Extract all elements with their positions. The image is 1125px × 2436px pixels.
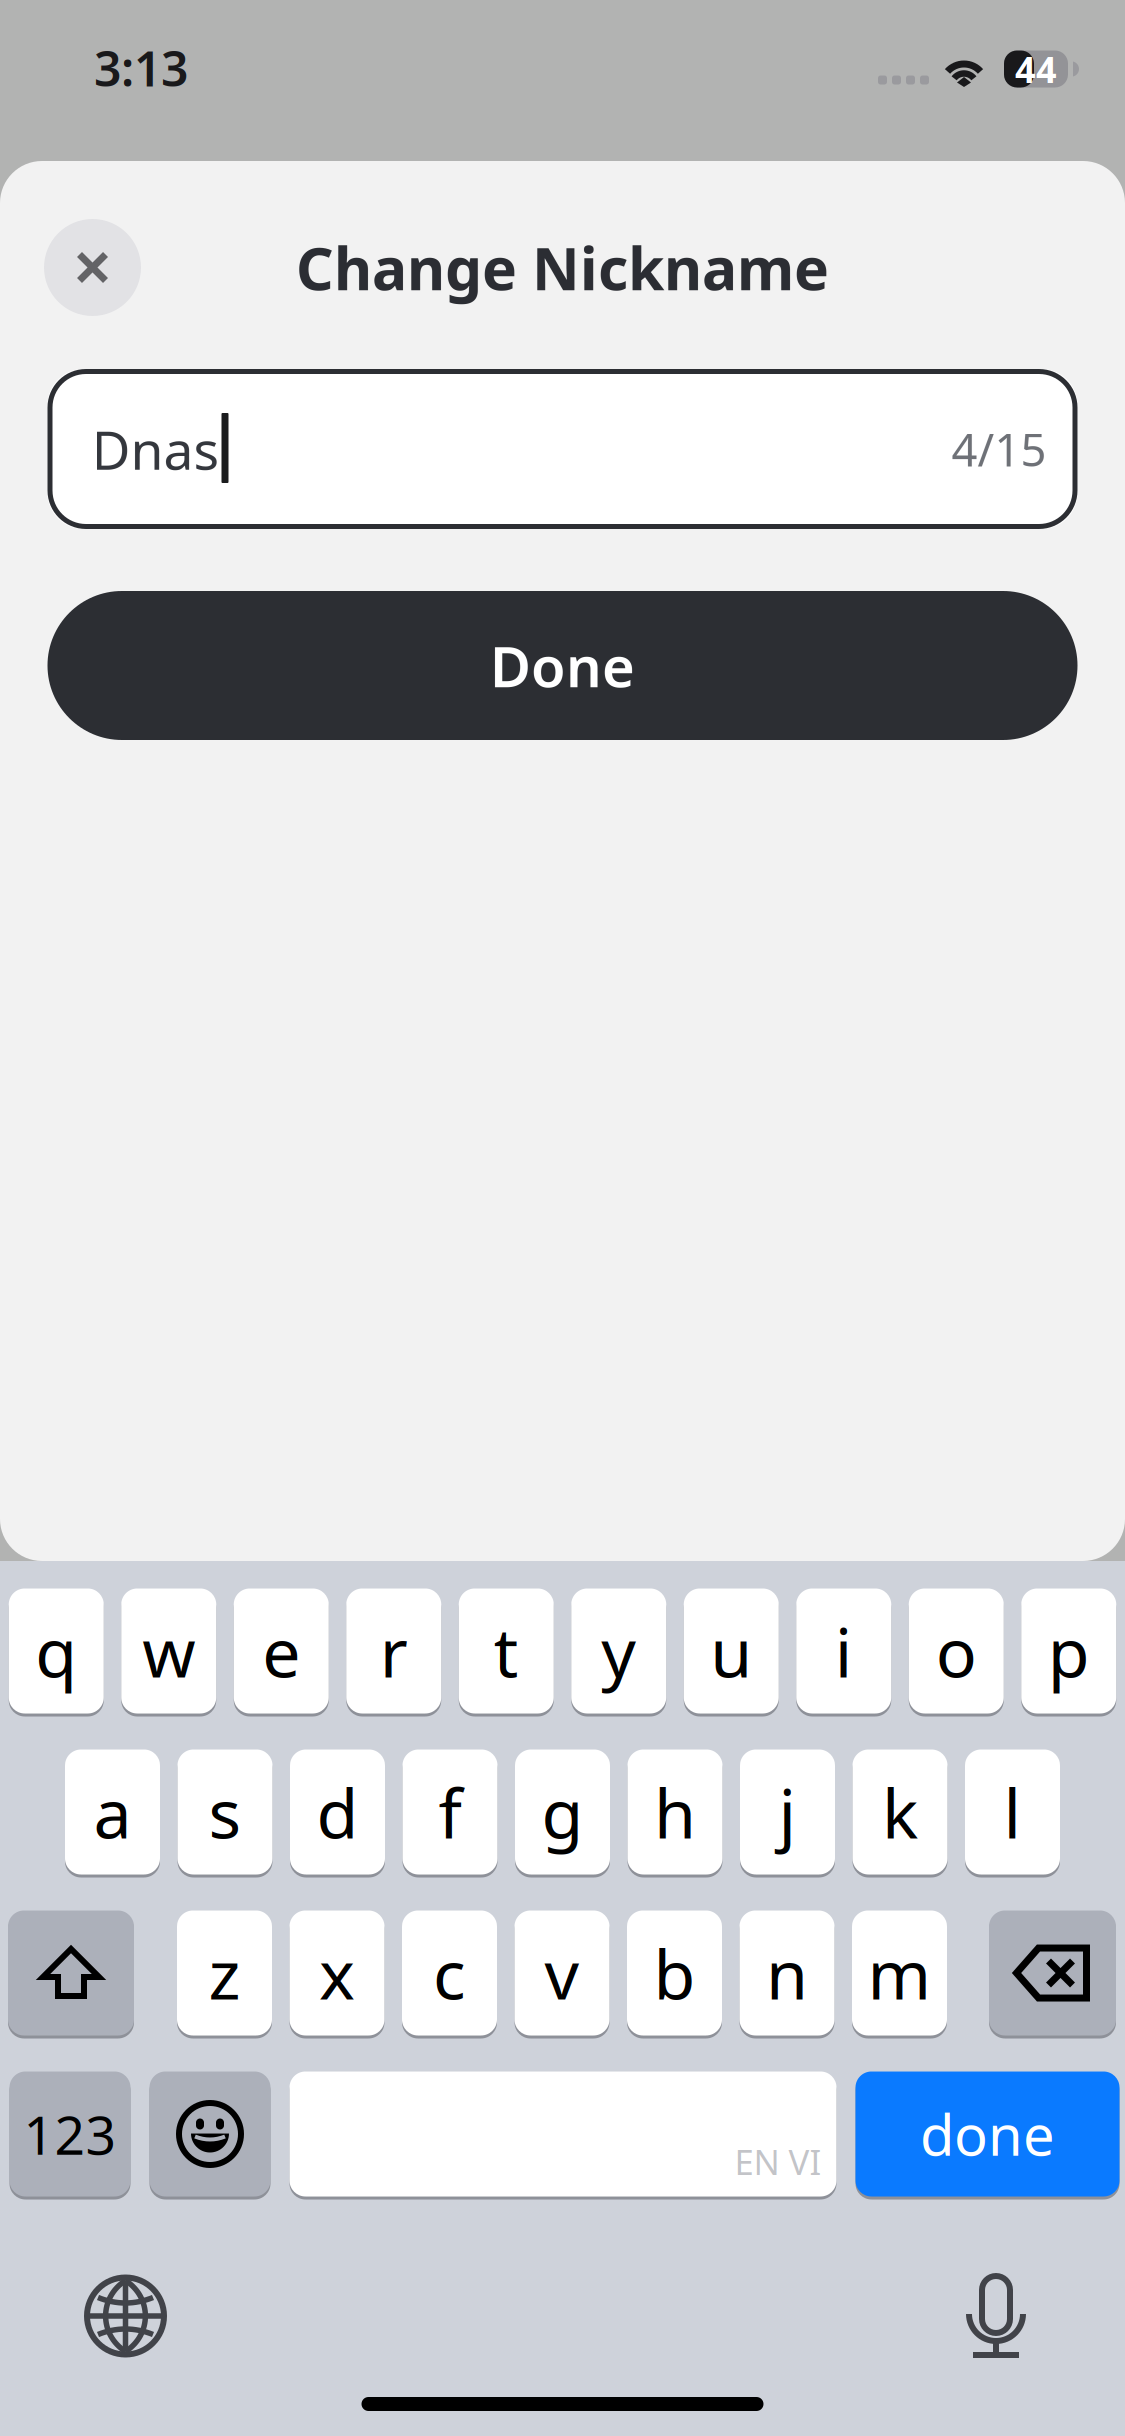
button[interactable]: g: [515, 1748, 610, 1876]
button[interactable]: j: [740, 1748, 835, 1876]
button[interactable]: w: [121, 1587, 216, 1715]
staticText: n: [766, 1928, 808, 2018]
staticText: p: [1048, 1606, 1090, 1696]
staticText: Change Nickname: [296, 228, 829, 306]
staticText: d: [316, 1767, 358, 1857]
staticText: 4/15: [951, 419, 1046, 479]
staticText: v: [544, 1928, 579, 2018]
staticText: y: [601, 1606, 636, 1696]
button[interactable]: n: [739, 1909, 834, 2037]
button[interactable]: z: [177, 1909, 272, 2037]
staticText: 123: [23, 2099, 116, 2169]
button[interactable]: k: [852, 1748, 947, 1876]
staticText: g: [541, 1767, 583, 1857]
button[interactable]: a: [65, 1748, 160, 1876]
button[interactable]: r: [346, 1587, 441, 1715]
staticText: 44: [1015, 45, 1057, 93]
button[interactable]: e: [234, 1587, 329, 1715]
staticText: b: [653, 1928, 695, 2018]
staticText: EN VI: [734, 2138, 821, 2184]
staticText: m: [867, 1928, 931, 2018]
button[interactable]: s: [177, 1748, 272, 1876]
button[interactable]: Delete: [989, 1909, 1116, 2037]
button[interactable]: Emoji: [149, 2070, 270, 2198]
staticText: 3:13: [94, 36, 188, 100]
button[interactable]: x: [289, 1909, 384, 2037]
button[interactable]: d: [290, 1748, 385, 1876]
button[interactable]: Dictate: [966, 2274, 1026, 2358]
button[interactable]: y: [571, 1587, 666, 1715]
button[interactable]: b: [627, 1909, 722, 2037]
button[interactable]: Close: [44, 219, 141, 316]
staticText: u: [710, 1606, 752, 1696]
staticText: x: [319, 1928, 355, 2018]
staticText: a: [93, 1767, 131, 1857]
button[interactable]: i: [796, 1587, 891, 1715]
button[interactable]: v: [514, 1909, 609, 2037]
staticText: q: [35, 1606, 77, 1696]
button[interactable]: f: [402, 1748, 497, 1876]
button[interactable]: space: [289, 2070, 836, 2198]
staticText: e: [262, 1606, 300, 1696]
staticText: l: [1003, 1767, 1021, 1857]
button[interactable]: Done: [47, 591, 1077, 740]
staticText: o: [936, 1606, 977, 1696]
staticText: Done: [490, 628, 635, 703]
staticText: h: [654, 1767, 696, 1857]
button[interactable]: c: [402, 1909, 497, 2037]
staticText: s: [208, 1767, 241, 1857]
staticText: z: [208, 1928, 240, 2018]
staticText: j: [778, 1767, 796, 1857]
staticText: Dnas: [91, 414, 219, 484]
staticText: k: [882, 1767, 918, 1857]
staticText: i: [835, 1606, 853, 1696]
button[interactable]: m: [852, 1909, 947, 2037]
button[interactable]: o: [909, 1587, 1004, 1715]
button[interactable]: h: [627, 1748, 722, 1876]
button[interactable]: Numbers: [9, 2070, 130, 2198]
staticText: done: [920, 2097, 1055, 2171]
button[interactable]: done: [855, 2070, 1119, 2198]
button[interactable]: p: [1021, 1587, 1116, 1715]
staticText: c: [433, 1928, 466, 2018]
button[interactable]: Next keyboard: [87, 2277, 164, 2354]
staticText: t: [494, 1606, 519, 1696]
button[interactable]: Shift: [8, 1909, 134, 2037]
button[interactable]: q: [9, 1587, 104, 1715]
staticText: w: [142, 1606, 195, 1696]
button[interactable]: l: [965, 1748, 1060, 1876]
button[interactable]: t: [459, 1587, 554, 1715]
staticText: f: [438, 1767, 461, 1857]
button[interactable]: u: [684, 1587, 779, 1715]
staticText: r: [380, 1606, 408, 1696]
